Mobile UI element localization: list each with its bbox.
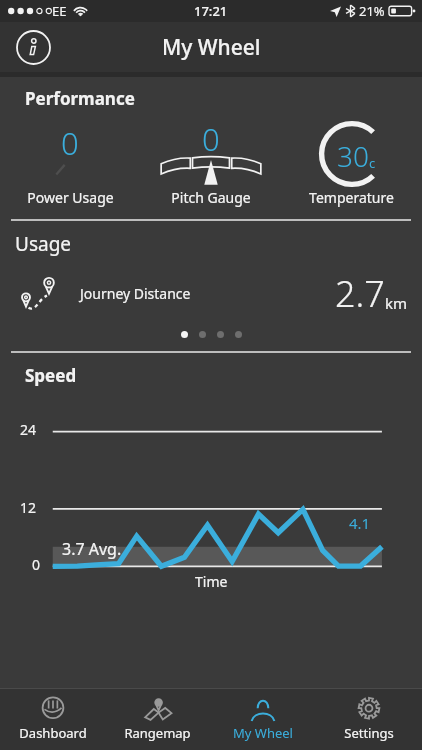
staticText: Usage [15,231,72,257]
staticText: 0 [61,122,79,164]
button[interactable]: Journey Distance [0,269,422,318]
staticText: 24 [20,420,37,439]
button[interactable]: Settings [316,688,422,750]
button[interactable]: 0 [140,122,281,207]
staticText: Pitch Gauge [171,188,251,207]
staticText: Dashboard [19,724,87,742]
staticText: Performance [25,87,135,110]
staticText: Journey Distance [80,284,191,303]
staticText: 2.7 [335,269,385,318]
staticText: km [385,293,408,313]
staticText: 30 [337,137,369,175]
staticText: 4.1 [349,513,371,533]
staticText: Power Usage [27,188,114,207]
staticText: 3.7 Avg. [62,538,122,560]
staticText: Settings [344,724,394,742]
button[interactable]: Info [14,28,52,66]
staticText: 17:21 [194,2,228,20]
button[interactable]: 30 [281,122,422,207]
staticText: Rangemap [124,724,191,742]
staticText: Temperature [309,188,394,207]
staticText: 21% [359,2,385,20]
staticText: My Wheel [162,33,261,62]
staticText: 12 [20,498,37,517]
staticText: Speed [25,364,77,387]
button[interactable]: Dashboard [0,688,105,750]
staticText: 0 [202,118,220,160]
button[interactable]: 0 [0,122,140,207]
button[interactable]: Rangemap [105,688,210,750]
button[interactable]: My Wheel [210,688,316,750]
staticText: c [369,154,376,172]
staticText: 0 [32,555,41,574]
staticText: My Wheel [233,724,293,742]
staticText: Time [195,572,228,591]
staticText: EE [52,2,67,20]
